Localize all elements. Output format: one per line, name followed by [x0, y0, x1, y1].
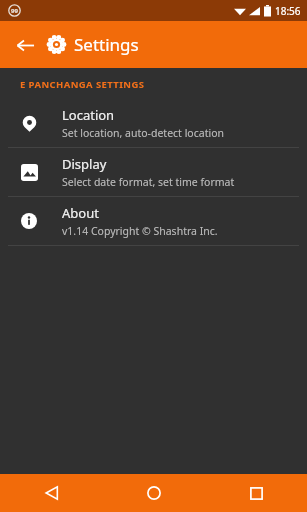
staticText: Settings	[74, 33, 139, 56]
button[interactable]: Home	[103, 474, 205, 512]
staticText: Display	[62, 155, 107, 173]
staticText: About	[62, 204, 99, 222]
button[interactable]: About	[0, 197, 307, 245]
button[interactable]: Recents	[205, 474, 307, 512]
staticText: E PANCHANGA SETTINGS	[20, 78, 145, 91]
staticText: 99	[11, 7, 18, 15]
button[interactable]: Back	[8, 28, 42, 62]
button[interactable]: Back	[0, 474, 103, 512]
staticText: Set location, auto-detect location	[62, 126, 224, 140]
staticText: 18:56	[275, 4, 301, 18]
button[interactable]: Location	[0, 99, 307, 147]
staticText: Location	[62, 106, 115, 124]
button[interactable]: Display	[0, 148, 307, 196]
staticText: Select date format, set time format	[62, 175, 235, 189]
staticText: v1.14 Copyright © Shashtra Inc.	[62, 224, 218, 238]
